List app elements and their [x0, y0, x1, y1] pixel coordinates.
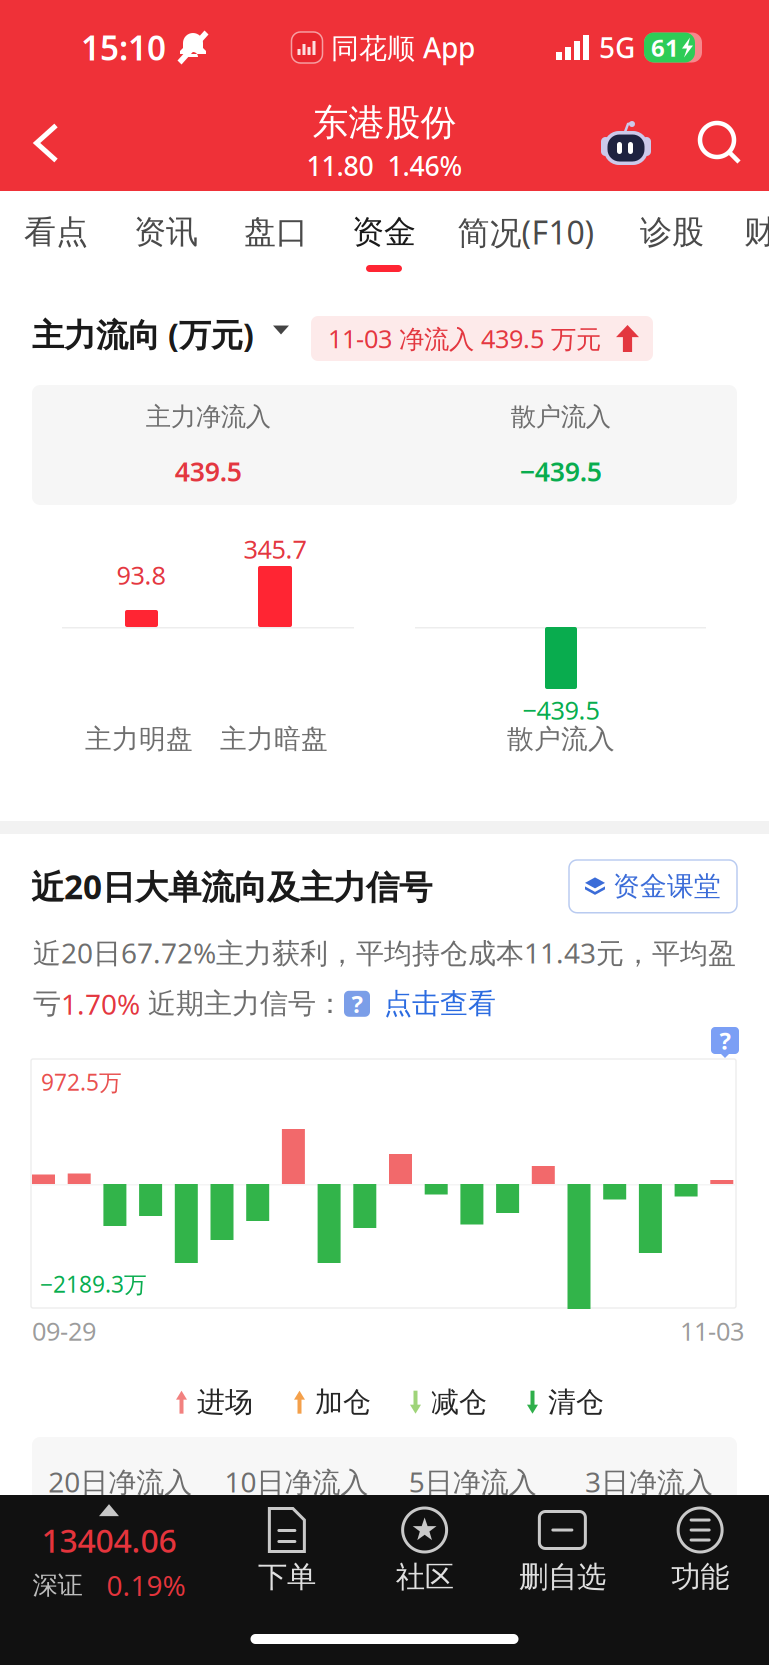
button[interactable]: 功能 — [631, 1495, 769, 1613]
staticText: 近20日大单流向及主力信号 — [31, 864, 432, 908]
button[interactable]: 看点 — [16, 191, 96, 295]
button[interactable]: 简况(F10) — [441, 191, 611, 295]
staticText: 1.70% — [61, 985, 140, 1022]
staticText: 近期主力信号： — [140, 987, 344, 1021]
staticText: 财 — [744, 212, 769, 252]
staticText: 主力明盘 — [85, 723, 193, 755]
staticText: 近20日67.72%主力获利，平均持仓成本11.43元，平均盈 — [33, 934, 736, 971]
button[interactable]: 图表说明 — [711, 1027, 739, 1059]
staticText: 11.80 1.46% — [306, 148, 462, 183]
button[interactable]: AI 助手 — [600, 95, 692, 191]
staticText: 15:10 — [81, 25, 166, 70]
staticText: 09-29 — [32, 1314, 96, 1348]
staticText: 下单 — [258, 1559, 316, 1595]
staticText: 3日净流入 — [585, 1463, 713, 1500]
staticText: 345.7 — [243, 532, 306, 566]
button[interactable]: 说明 — [344, 991, 370, 1017]
button[interactable]: 财 — [735, 191, 769, 295]
button[interactable]: 盘口 — [236, 191, 316, 295]
staticText: −439.5 — [522, 693, 599, 727]
staticText: 资金课堂 — [613, 870, 721, 903]
staticText: ? — [719, 1025, 730, 1056]
staticText: 13404.06 — [41, 1519, 176, 1562]
staticText: 11-03 净流入 439.5 万元 — [328, 322, 601, 355]
staticText: 93.8 — [116, 558, 165, 592]
staticText: 散户流入 — [507, 723, 615, 755]
staticText: 删自选 — [519, 1559, 606, 1595]
staticText: ? — [351, 988, 362, 1020]
button[interactable]: 点击查看 — [370, 987, 496, 1021]
staticText: 10日净流入 — [224, 1463, 368, 1500]
button[interactable]: 下单 — [218, 1495, 356, 1613]
staticText: 0.19% — [106, 1567, 185, 1604]
staticText: 资讯 — [134, 212, 198, 252]
staticText: 61 — [651, 32, 679, 63]
button[interactable]: 11-03 净流入 439.5 万元 — [311, 316, 653, 361]
staticText: 社区 — [396, 1559, 454, 1595]
staticText: 5G — [599, 29, 635, 66]
button[interactable]: 搜索 — [692, 95, 750, 191]
staticText: 点击查看 — [384, 987, 496, 1021]
staticText: 减仓 — [431, 1385, 487, 1419]
button[interactable]: 资金 — [344, 191, 424, 295]
staticText: 亏 — [33, 987, 61, 1021]
button[interactable]: 选择周期 — [260, 309, 302, 351]
staticText: 439.5 — [175, 453, 242, 489]
button[interactable]: 资金课堂 — [569, 860, 737, 913]
staticText: 东港股份 — [312, 101, 456, 145]
button[interactable]: 返回 — [0, 95, 92, 191]
staticText: 加仓 — [315, 1385, 371, 1419]
staticText: 20日净流入 — [48, 1463, 192, 1500]
staticText: 看点 — [24, 212, 88, 252]
staticText: 简况(F10) — [457, 211, 594, 253]
staticText: 深证 — [32, 1570, 82, 1601]
staticText: −2189.3万 — [40, 1269, 147, 1299]
staticText: 972.5万 — [41, 1067, 122, 1097]
staticText: 5日净流入 — [409, 1463, 537, 1500]
staticText: 同花顺 App — [323, 29, 475, 66]
staticText: 资金 — [352, 212, 416, 252]
staticText: 散户流入 — [511, 401, 611, 432]
staticText: 11-03 — [680, 1314, 744, 1348]
staticText: 清仓 — [548, 1385, 604, 1419]
staticText: −439.5 — [520, 453, 602, 489]
button[interactable]: 深证指数 — [0, 1495, 218, 1613]
staticText: 功能 — [671, 1559, 729, 1595]
staticText: 进场 — [197, 1385, 253, 1419]
staticText: 盘口 — [244, 212, 308, 252]
staticText: 主力暗盘 — [220, 723, 328, 755]
button[interactable]: 删自选 — [493, 1495, 631, 1613]
staticText: 主力流向 (万元) — [32, 313, 254, 355]
button[interactable]: 社区 — [356, 1495, 494, 1613]
staticText: 诊股 — [640, 212, 704, 252]
button[interactable]: 诊股 — [632, 191, 712, 295]
button[interactable]: 资讯 — [126, 191, 206, 295]
staticText: 主力净流入 — [146, 401, 271, 432]
